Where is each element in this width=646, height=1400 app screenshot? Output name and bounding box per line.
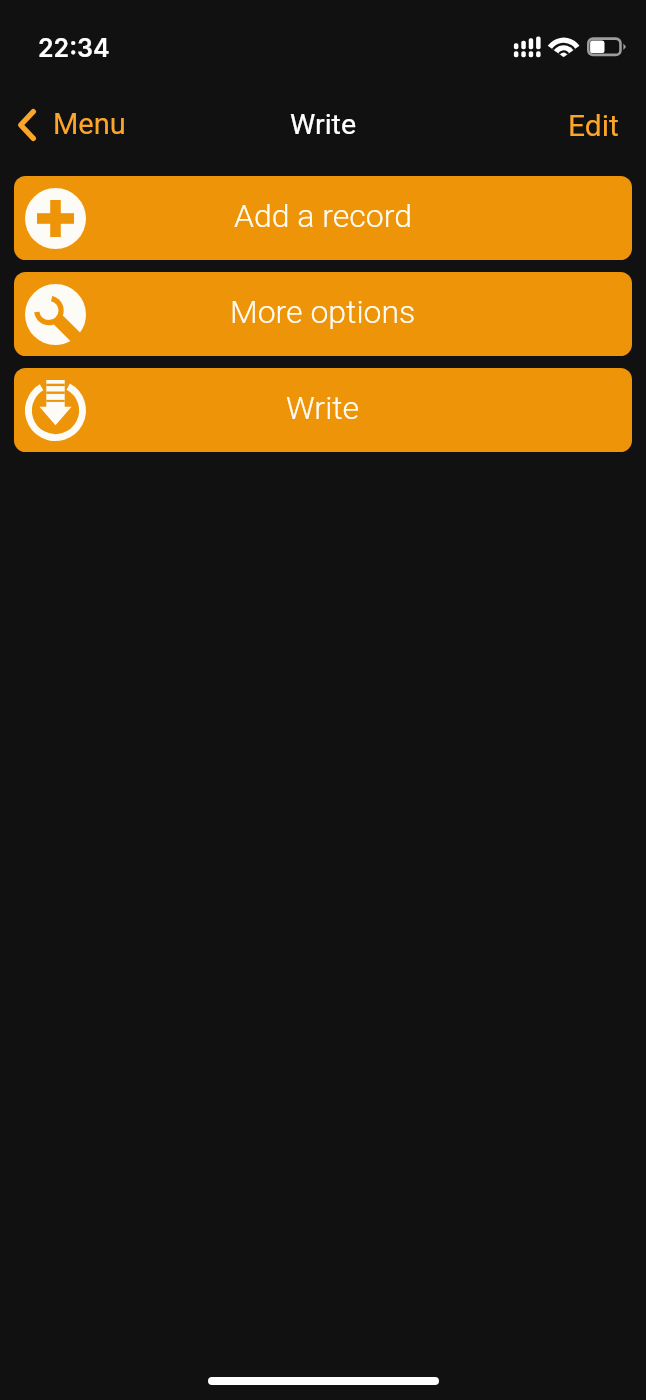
button[interactable]: Write — [14, 368, 632, 452]
staticText: Menu — [53, 107, 126, 141]
other: Cellular signal — [513, 30, 543, 60]
staticText: 22:34 — [38, 33, 110, 63]
button[interactable]: Add a record — [14, 176, 632, 260]
staticText: Edit — [568, 108, 619, 143]
button[interactable]: More options — [14, 272, 632, 356]
staticText: More options — [230, 293, 416, 331]
other: Battery — [587, 30, 629, 60]
button[interactable]: Back — [0, 104, 140, 148]
staticText: Write — [286, 389, 360, 427]
button[interactable]: Edit — [550, 104, 646, 150]
other: Back — [18, 109, 36, 141]
staticText: Add a record — [234, 197, 412, 235]
staticText: Write — [290, 108, 357, 141]
other: Wi-Fi — [550, 30, 578, 58]
